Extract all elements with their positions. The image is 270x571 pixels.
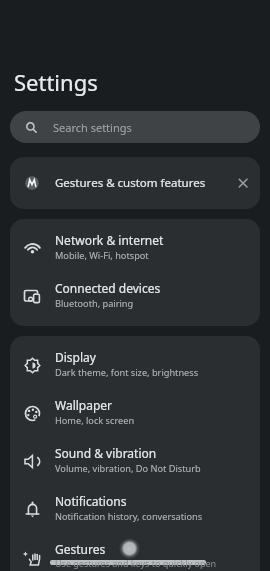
staticText: Bluetooth, pairing [55, 297, 134, 310]
button[interactable] [238, 178, 248, 188]
button[interactable]: Wallpaper [10, 389, 260, 437]
staticText: Display [55, 349, 96, 365]
staticText: Gestures [55, 541, 106, 557]
button[interactable]: Gestures [10, 533, 260, 571]
button[interactable]: Display [10, 341, 260, 389]
button[interactable]: Search settings [10, 111, 260, 143]
button[interactable]: Gestures & custom features [10, 157, 260, 209]
staticText: Notification history, conversations [55, 510, 203, 523]
staticText: Settings [14, 67, 98, 97]
staticText: Use gestures and keys to quickly open [55, 557, 217, 569]
staticText: Network & internet [55, 232, 164, 248]
button[interactable]: Notifications [10, 485, 260, 533]
button[interactable]: Network & internet [10, 224, 260, 272]
staticText: Sound & vibration [55, 445, 157, 461]
button[interactable]: Sound & vibration [10, 437, 260, 485]
staticText: Mobile, Wi-Fi, hotspot [55, 249, 149, 262]
staticText: Gestures & custom features [55, 175, 206, 191]
staticText: Dark theme, font size, brightness [55, 366, 199, 379]
staticText: Connected devices [55, 280, 161, 296]
staticText: Search settings [53, 120, 132, 135]
staticText: Notifications [55, 493, 127, 509]
staticText: Wallpaper [55, 397, 113, 413]
button[interactable]: Connected devices [10, 272, 260, 320]
staticText: Volume, vibration, Do Not Disturb [55, 462, 201, 475]
staticText: Home, lock screen [55, 414, 135, 427]
